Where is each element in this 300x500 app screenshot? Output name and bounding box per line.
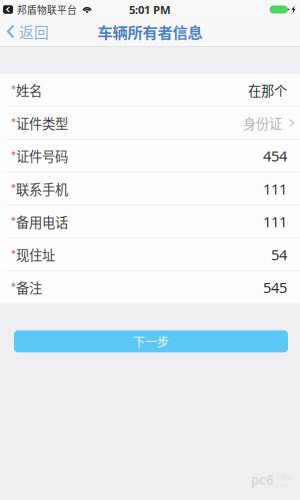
staticText: 备用电话: [16, 212, 68, 231]
button[interactable]: 下一步: [14, 330, 288, 352]
button[interactable]: 备注: [0, 271, 300, 303]
staticText: 下载站: [275, 472, 293, 481]
button[interactable]: 证件类型: [0, 107, 300, 139]
button[interactable]: 联系手机: [0, 173, 300, 205]
staticText: 111: [263, 179, 287, 199]
staticText: 返回: [19, 21, 49, 42]
staticText: 证件类型: [16, 113, 68, 132]
staticText: .com: [275, 481, 290, 489]
button[interactable]: 姓名: [0, 74, 300, 106]
staticText: 545: [263, 277, 287, 297]
staticText: 姓名: [16, 80, 42, 100]
button[interactable]: 返回: [0, 19, 57, 47]
button[interactable]: 证件号码: [0, 140, 300, 172]
staticText: 车辆所有者信息: [97, 20, 202, 43]
staticText: 5:01 PM: [129, 2, 171, 17]
staticText: 111: [263, 212, 287, 232]
staticText: 在那个: [248, 80, 287, 100]
staticText: 现住址: [16, 245, 55, 264]
staticText: 下一步: [133, 333, 169, 350]
staticText: 联系手机: [16, 179, 68, 198]
staticText: 身份证: [243, 113, 282, 132]
staticText: 邦盾物联平台: [17, 2, 77, 17]
staticText: 备注: [16, 278, 42, 297]
button[interactable]: 现住址: [0, 238, 300, 270]
staticText: pc6: [251, 471, 274, 489]
staticText: 54: [271, 244, 287, 264]
button[interactable]: 备用电话: [0, 206, 300, 238]
staticText: 454: [263, 146, 287, 166]
staticText: 证件号码: [16, 146, 68, 165]
